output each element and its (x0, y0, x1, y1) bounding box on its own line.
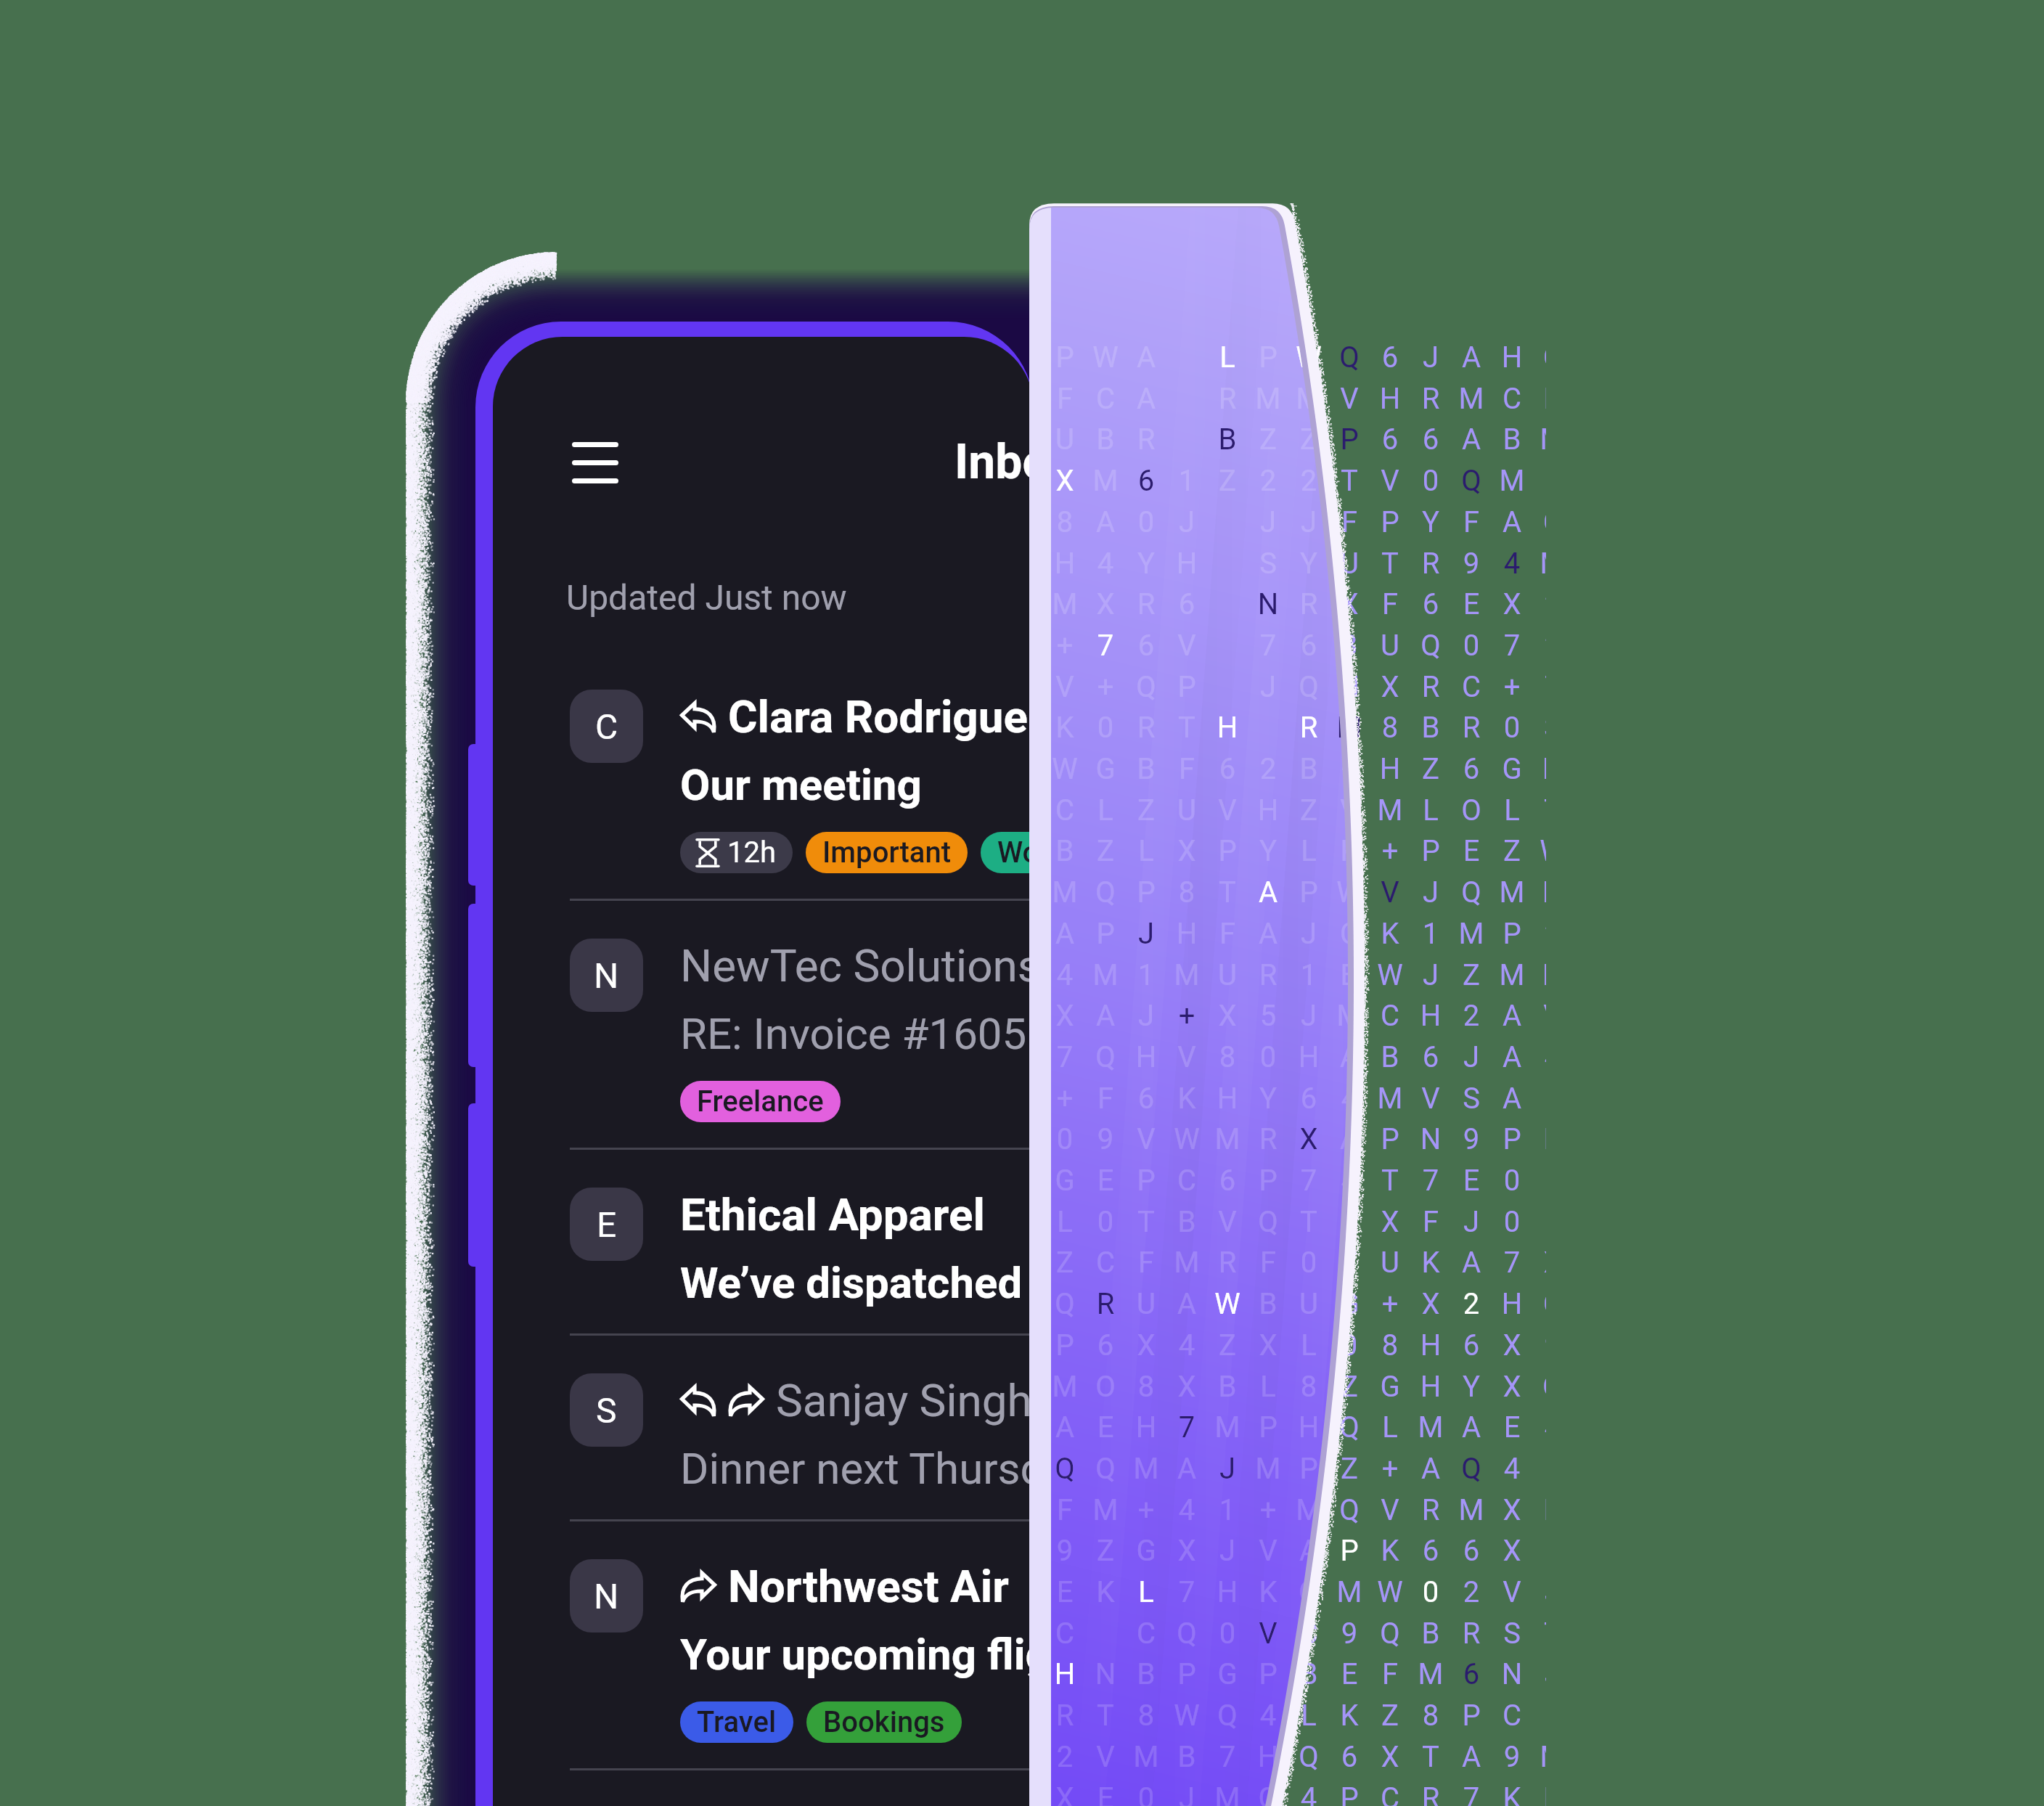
staticText: J (1126, 999, 1166, 1033)
staticText: L (1492, 793, 1532, 828)
staticText: X (1126, 1328, 1166, 1362)
staticText: M (1207, 1781, 1248, 1806)
staticText: + (1492, 670, 1532, 704)
button[interactable]: Important (806, 832, 968, 873)
button[interactable]: Travel (680, 1701, 793, 1743)
staticText: 2 (1451, 999, 1492, 1033)
staticText: H (1329, 670, 1370, 704)
staticText: W (1166, 1699, 1207, 1733)
staticText: 8 (1288, 1370, 1329, 1404)
staticText: Sanjay Singh (776, 1374, 1032, 1427)
staticText: + (1248, 1493, 1288, 1527)
staticText: M (1492, 875, 1532, 910)
staticText: J (1410, 958, 1451, 992)
staticText: 7 (1166, 1575, 1207, 1609)
staticText: M (1532, 1740, 1546, 1774)
staticText: 7 (1410, 1164, 1451, 1198)
staticText: 4 (1045, 958, 1085, 992)
staticText: 0 (1248, 1040, 1288, 1074)
staticText: P (1248, 1164, 1288, 1198)
staticText: M (1451, 382, 1492, 416)
staticText: M (1451, 382, 1492, 416)
staticText: C (1370, 999, 1410, 1033)
staticText: A (1166, 1452, 1207, 1486)
staticText: M (1532, 422, 1546, 457)
staticText: 6 (1410, 1534, 1451, 1568)
staticText: Z (1085, 1534, 1126, 1568)
staticText: V (1126, 1122, 1166, 1156)
staticText: J (1451, 1205, 1492, 1239)
button[interactable]: Freelance (680, 1081, 841, 1122)
staticText: B (1126, 1657, 1166, 1691)
staticText: F (1370, 587, 1410, 621)
staticText: F (1045, 382, 1085, 416)
staticText: L (1370, 1410, 1410, 1445)
staticText: 0 (1288, 1246, 1329, 1280)
button[interactable]: 12h (680, 832, 793, 873)
staticText: H (1126, 1410, 1166, 1445)
staticText: 6 (1451, 1328, 1492, 1362)
button[interactable]: C (493, 652, 1034, 901)
button[interactable]: N (493, 901, 1034, 1150)
button[interactable]: N (493, 1521, 1034, 1770)
staticText: P (1085, 917, 1126, 951)
staticText: U (1166, 793, 1207, 828)
staticText: Q (1329, 1493, 1370, 1527)
staticText: N (1248, 587, 1288, 621)
staticText: H (1207, 1575, 1248, 1609)
staticText: 9 (1329, 1617, 1370, 1651)
staticText: 0 (1207, 1617, 1248, 1651)
staticText: 6 (1410, 587, 1451, 621)
staticText: V (1045, 670, 1085, 704)
staticText: C (1492, 1699, 1532, 1733)
staticText: N (1532, 752, 1546, 786)
staticText: V (1492, 1575, 1532, 1609)
staticText: A (1492, 1040, 1532, 1074)
button[interactable]: E (493, 1150, 1034, 1336)
staticText: R (1126, 711, 1166, 745)
staticText: J (1288, 505, 1329, 539)
staticText: H (1532, 875, 1546, 910)
staticText: T (1329, 464, 1370, 498)
staticText: L (1207, 340, 1248, 375)
staticText: P (1329, 1781, 1370, 1806)
staticText: Z (1492, 834, 1532, 868)
staticText: W (1085, 340, 1126, 375)
staticText: A (1329, 1122, 1370, 1156)
staticText: 6 (1370, 340, 1410, 375)
staticText: Z (1410, 752, 1451, 786)
staticText: B (1207, 422, 1248, 457)
staticText: T (1166, 711, 1207, 745)
staticText: A (1126, 382, 1166, 416)
staticText: U (1288, 1287, 1329, 1321)
staticText: R (1410, 547, 1451, 581)
staticText: A (1410, 1452, 1451, 1486)
staticText: Updated Just now (566, 577, 847, 618)
button[interactable]: Menu (555, 422, 635, 502)
staticText: + (1329, 752, 1370, 786)
staticText: V (1248, 1617, 1288, 1651)
staticText: 6 (1288, 629, 1329, 663)
button[interactable]: Bookings (806, 1701, 962, 1743)
staticText: H (1207, 1082, 1248, 1116)
staticText: M (1532, 422, 1546, 457)
staticText: W (1329, 875, 1370, 910)
staticText: X (1166, 834, 1207, 868)
staticText: M (1492, 958, 1532, 992)
staticText: R (1207, 382, 1248, 416)
staticText: R (1288, 587, 1329, 621)
staticText: Q (1329, 340, 1370, 375)
staticText: V (1045, 670, 1085, 704)
staticText: T (1207, 875, 1248, 910)
button[interactable]: S (493, 1336, 1034, 1521)
staticText: Q (1410, 629, 1451, 663)
staticText: V (1410, 1082, 1451, 1116)
staticText: A (1451, 1246, 1492, 1280)
staticText: P (1329, 1534, 1370, 1568)
button[interactable]: Work (981, 832, 1034, 873)
